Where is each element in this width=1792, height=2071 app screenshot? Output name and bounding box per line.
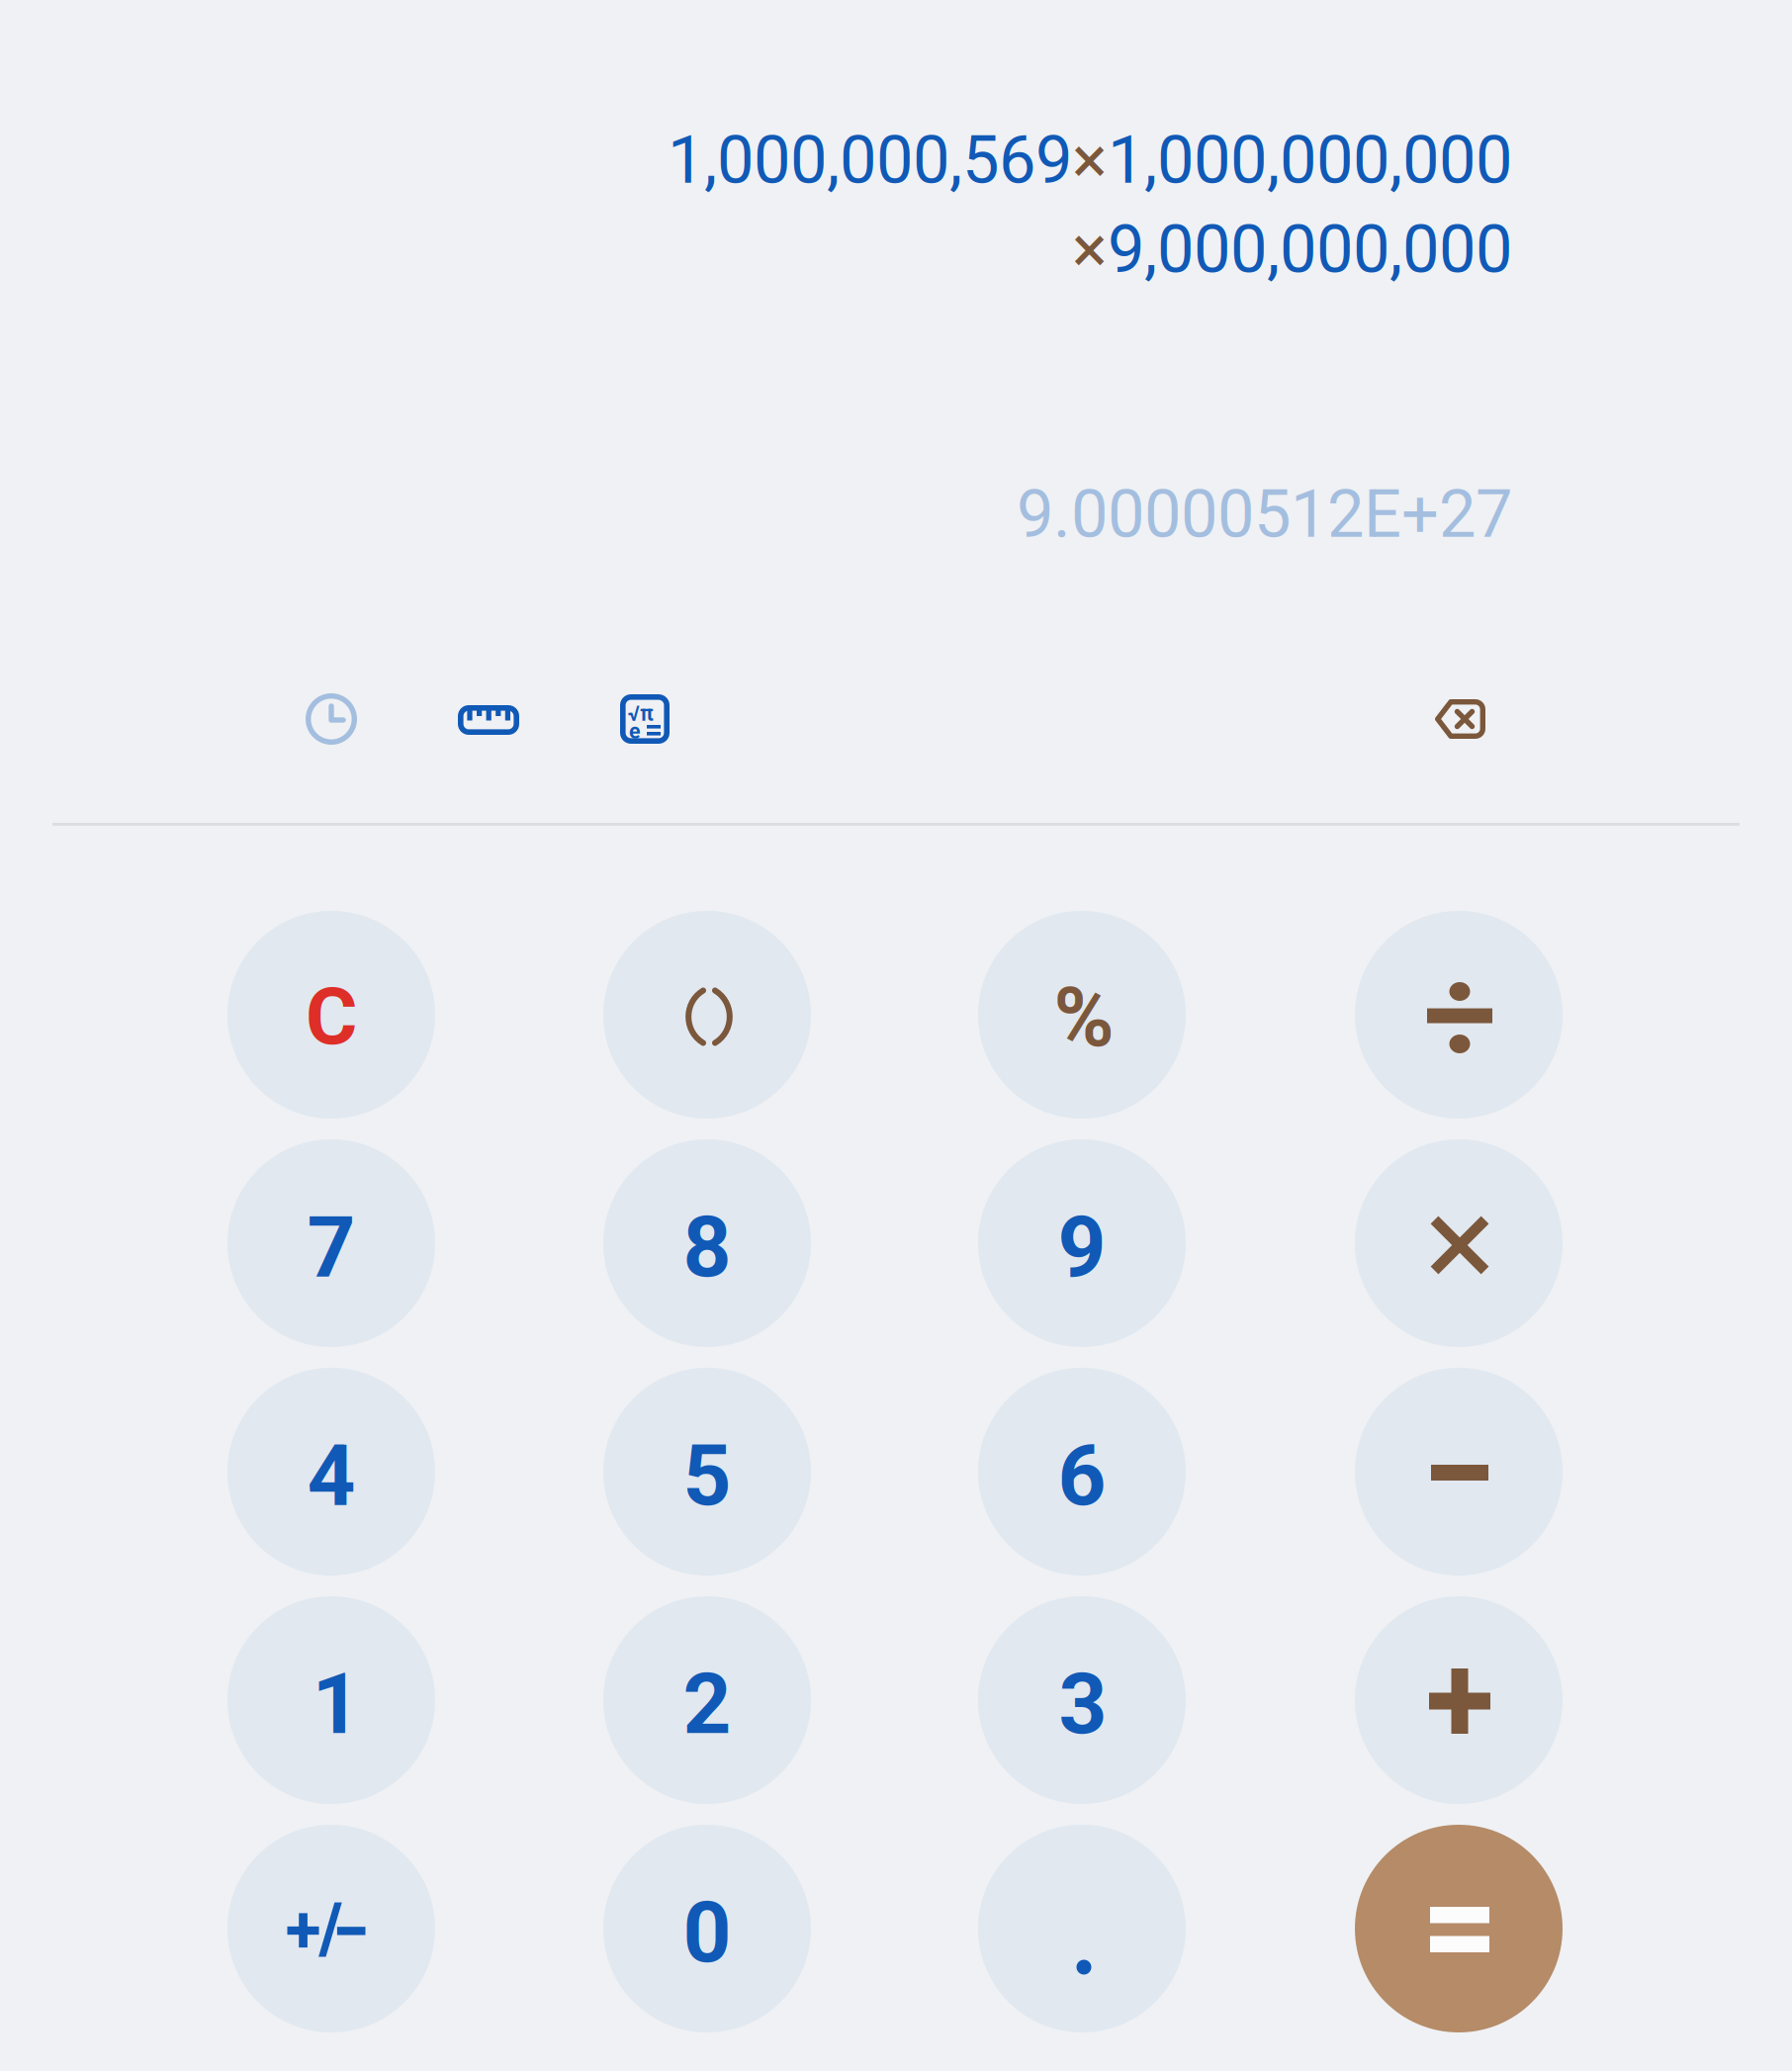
button[interactable] <box>1355 911 1563 1119</box>
button[interactable] <box>1355 1825 1563 2032</box>
button[interactable]: 1 <box>227 1596 435 1804</box>
button[interactable] <box>603 911 811 1119</box>
staticText: 7 <box>307 1198 356 1297</box>
staticText: e <box>629 719 641 744</box>
staticText: 6 <box>1058 1426 1106 1525</box>
button[interactable] <box>1355 1596 1563 1804</box>
staticText: 8 <box>683 1198 731 1297</box>
button[interactable]: 3 <box>978 1596 1186 1804</box>
button[interactable]: 9 <box>978 1139 1186 1347</box>
button[interactable]: C <box>227 911 435 1119</box>
staticText: × <box>1072 211 1108 288</box>
button[interactable] <box>1355 1139 1563 1347</box>
staticText: 0 <box>683 1883 731 1982</box>
button[interactable]: Formulas <box>620 694 670 744</box>
button[interactable]: History <box>306 693 357 745</box>
button[interactable]: Unit converter <box>458 705 519 735</box>
staticText: 1,000,000,569 <box>668 122 1072 199</box>
staticText: 4 <box>307 1426 356 1525</box>
staticText: × <box>1072 122 1108 199</box>
button[interactable]: 8 <box>603 1139 811 1347</box>
staticText: 3 <box>1059 1655 1107 1754</box>
button[interactable]: Backspace <box>1434 699 1485 739</box>
button[interactable]: 4 <box>227 1368 435 1576</box>
staticText: √π <box>628 701 654 726</box>
staticText: 9 <box>1058 1198 1106 1297</box>
staticText: 9.00000512E+27 <box>1017 476 1512 553</box>
button[interactable] <box>978 1825 1186 2032</box>
staticText: C <box>306 970 357 1063</box>
staticText: 1,000,000,000 <box>1108 122 1512 199</box>
button[interactable] <box>227 1825 435 2032</box>
button[interactable]: 5 <box>603 1368 811 1576</box>
staticText: 2 <box>683 1655 731 1754</box>
button[interactable]: 0 <box>603 1825 811 2032</box>
staticText: 1 <box>312 1655 360 1754</box>
button[interactable]: % <box>978 911 1186 1119</box>
button[interactable]: 6 <box>978 1368 1186 1576</box>
staticText: 9,000,000,000 <box>1108 211 1512 288</box>
button[interactable]: 2 <box>603 1596 811 1804</box>
staticText: 5 <box>683 1426 731 1525</box>
staticText: % <box>1054 970 1114 1066</box>
button[interactable]: 7 <box>227 1139 435 1347</box>
button[interactable] <box>1355 1368 1563 1576</box>
